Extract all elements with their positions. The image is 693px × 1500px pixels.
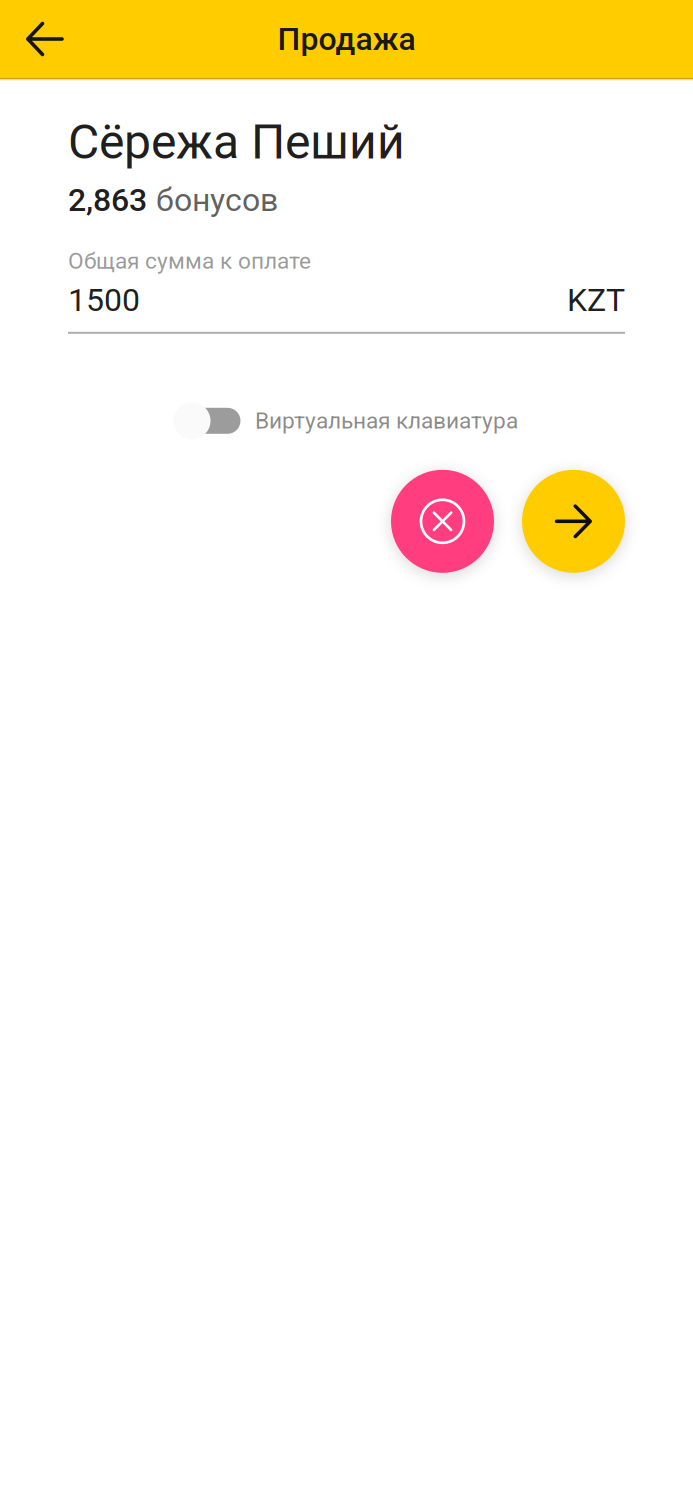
staticText: 1500 [68,281,140,319]
staticText: Сёрежа Пеший [68,114,405,170]
staticText: Виртуальная клавиатура [255,407,518,434]
staticText: бонусов [156,181,278,219]
button[interactable]: Cancel [391,470,494,573]
button[interactable]: Back [0,0,110,78]
staticText: 2,863 [68,181,147,219]
staticText: KZT [567,281,625,319]
button[interactable]: Continue [522,470,625,573]
staticText: Общая сумма к оплате [68,248,311,274]
button[interactable]: Виртуальная клавиатура [170,399,518,443]
staticText: Продажа [277,20,415,58]
